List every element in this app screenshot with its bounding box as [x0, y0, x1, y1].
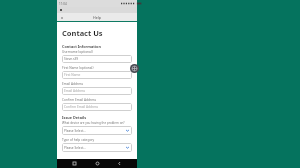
- button[interactable]: Recents: [70, 159, 79, 168]
- staticText: Username (optional): [62, 50, 93, 54]
- button[interactable]: Back: [59, 15, 64, 20]
- button[interactable]: Home: [93, 159, 102, 168]
- staticText: Email Address: [62, 82, 84, 86]
- staticText: First Name: [64, 73, 81, 77]
- staticText: Please Select...: [64, 129, 86, 133]
- staticText: Help: [93, 15, 101, 20]
- button[interactable]: Accessibility menu: [130, 64, 139, 73]
- staticText: Issue Details: [62, 115, 87, 120]
- staticText: Confirm Email Address: [64, 105, 99, 109]
- button[interactable]: Confirm Email Address: [62, 103, 132, 111]
- button[interactable]: Email Address: [62, 87, 132, 95]
- staticText: Email Address: [64, 89, 86, 93]
- button[interactable]: Back: [115, 159, 124, 168]
- button[interactable]: Close: [59, 8, 63, 12]
- button[interactable]: Steve.s39: [62, 55, 132, 63]
- button[interactable]: First Name: [62, 71, 132, 79]
- staticText: Contact Information: [62, 44, 101, 49]
- button[interactable]: Please Select...: [62, 126, 132, 135]
- staticText: Type of help category: [62, 138, 95, 142]
- staticText: What device are you having the problem o…: [62, 121, 125, 125]
- staticText: Please Select...: [64, 146, 86, 150]
- staticText: 11:04: [59, 2, 67, 6]
- staticText: First Name (optional): [62, 66, 94, 70]
- staticText: Steve.s39: [64, 57, 79, 61]
- staticText: Contact Us: [62, 28, 103, 38]
- button[interactable]: Please Select...: [62, 143, 132, 152]
- staticText: Confirm Email Address: [62, 98, 97, 102]
